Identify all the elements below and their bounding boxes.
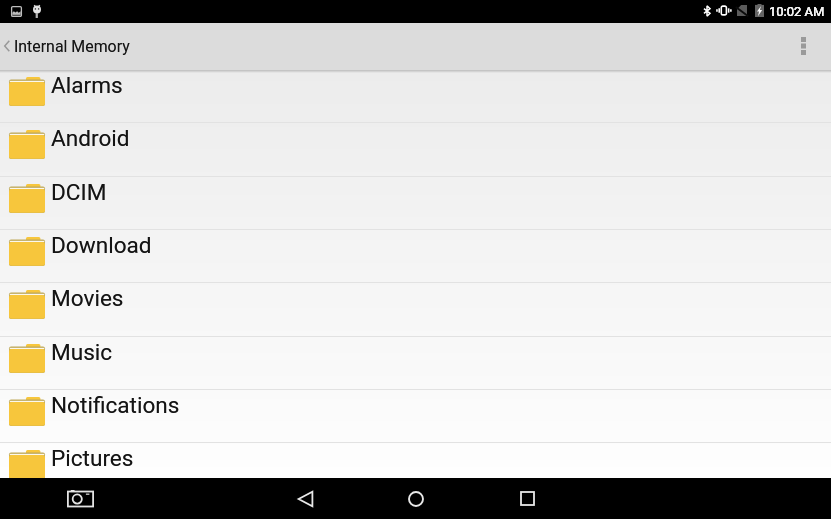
button[interactable]: Back [277, 478, 333, 519]
button[interactable]: More options [785, 23, 831, 70]
staticText: 10:02 AM [769, 4, 825, 19]
button[interactable]: DCIM [0, 177, 831, 230]
button[interactable]: Android [0, 123, 831, 176]
staticText: Download [51, 232, 152, 258]
staticText: Pictures [51, 445, 134, 471]
button[interactable]: Download [0, 230, 831, 283]
staticText: Pictures [51, 445, 134, 471]
staticText: Alarms [51, 72, 123, 98]
staticText: Notifications [51, 392, 180, 418]
staticText: Download [51, 232, 152, 258]
button[interactable]: Home [388, 478, 444, 519]
staticText: 10:02 AM [769, 4, 825, 19]
button[interactable]: Pictures [0, 443, 831, 496]
staticText: DCIM [51, 179, 107, 205]
staticText: Music [51, 339, 113, 365]
staticText: Notifications [51, 392, 180, 418]
button[interactable]: Recents [499, 478, 555, 519]
staticText: Movies [51, 285, 124, 311]
other: Back [4, 40, 10, 52]
staticText: DCIM [51, 179, 107, 205]
staticText: Android [51, 125, 130, 151]
staticText: Music [51, 339, 113, 365]
button[interactable]: Notifications [0, 390, 831, 443]
button[interactable]: Back [0, 23, 140, 70]
staticText: Android [51, 125, 130, 151]
staticText: Internal Memory [14, 37, 130, 56]
button[interactable]: Music [0, 337, 831, 390]
staticText: Internal Memory [14, 37, 130, 56]
button[interactable]: Movies [0, 283, 831, 336]
button[interactable]: Screenshot [62, 480, 98, 516]
button[interactable]: Alarms [0, 70, 831, 123]
staticText: Alarms [51, 72, 123, 98]
staticText: Movies [51, 285, 124, 311]
